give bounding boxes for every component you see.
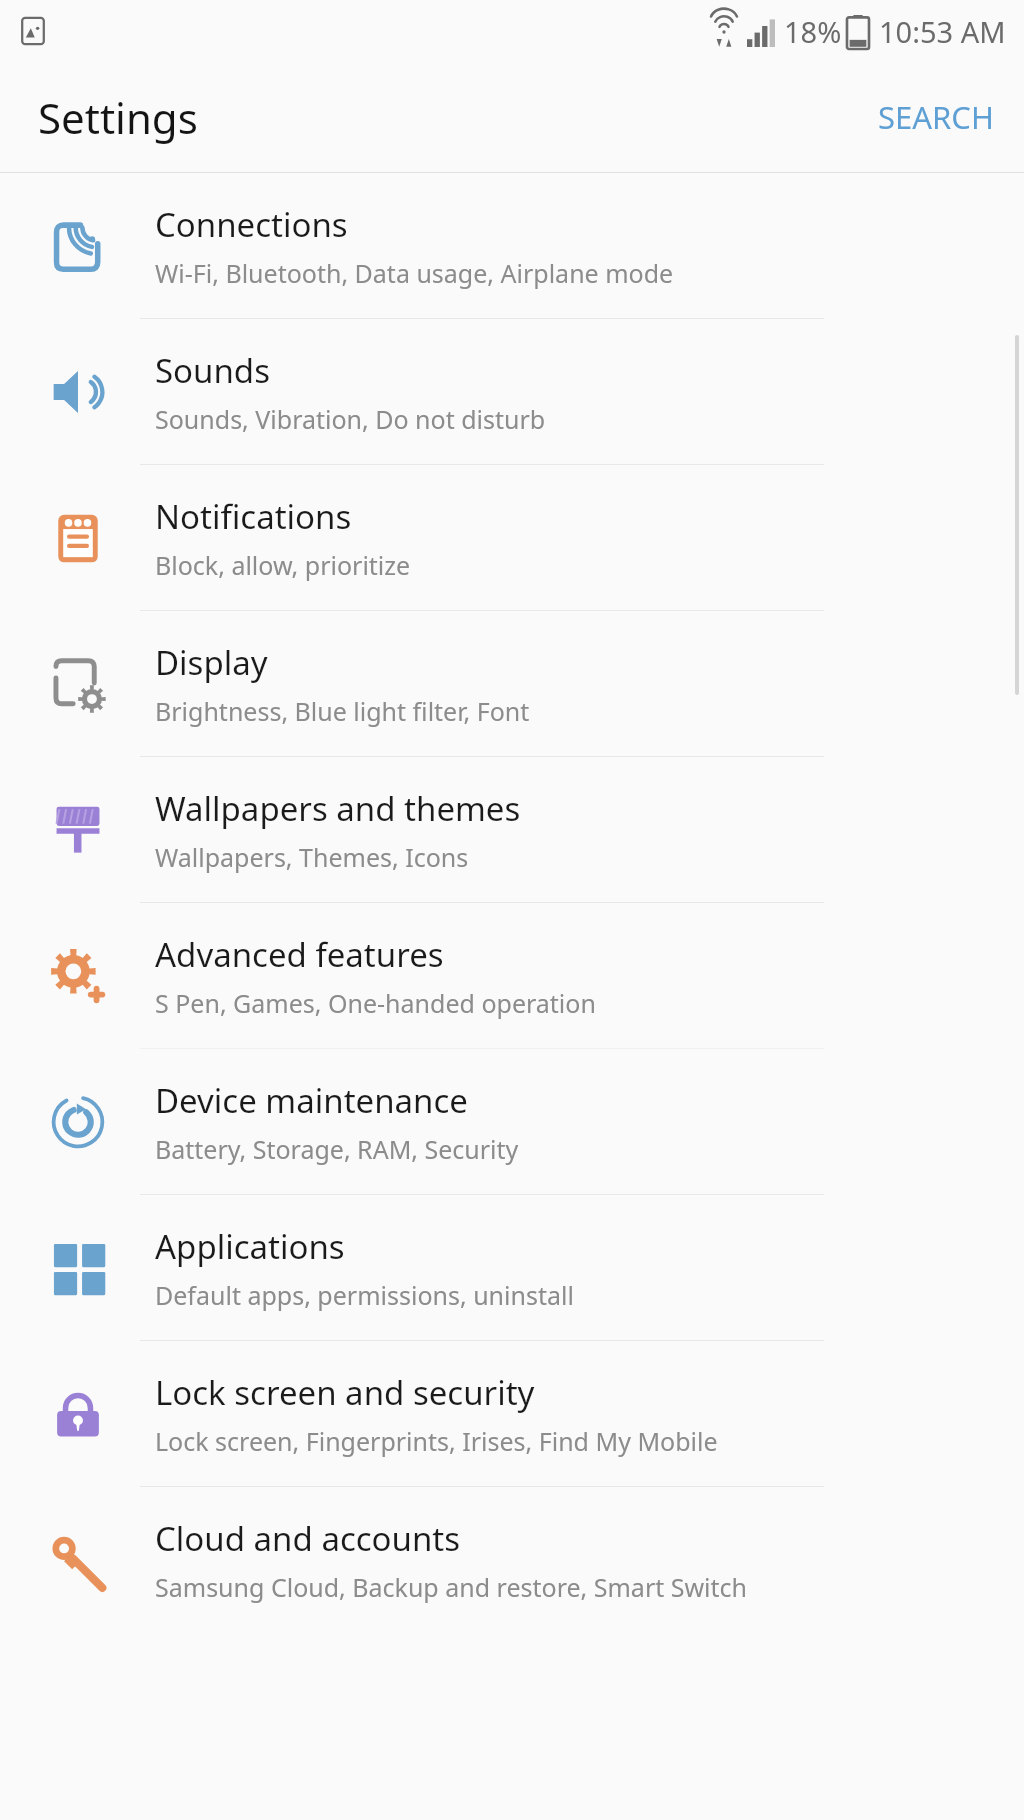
button[interactable]: Applications [0,1195,1024,1340]
button[interactable]: Cloud and accounts [0,1487,1024,1632]
staticText: Wallpapers, Themes, Icons [155,840,469,874]
staticText: Sounds [155,348,270,393]
button[interactable]: Sounds [0,319,1024,464]
button[interactable]: SEARCH [848,80,1024,154]
button[interactable]: Display [0,611,1024,756]
button[interactable]: Advanced features [0,903,1024,1048]
staticText: Wi-Fi, Bluetooth, Data usage, Airplane m… [155,256,674,290]
staticText: Brightness, Blue light filter, Font [155,694,530,728]
staticText: Samsung Cloud, Backup and restore, Smart… [155,1570,748,1604]
staticText: Lock screen and security [155,1370,535,1415]
staticText: Connections [155,202,348,247]
staticText: Settings [38,89,198,146]
staticText: Display [155,640,268,685]
staticText: Applications [155,1224,345,1269]
staticText: Cloud and accounts [155,1516,461,1561]
staticText: SEARCH [878,96,994,138]
staticText: Notifications [155,494,352,539]
button[interactable]: Device maintenance [0,1049,1024,1194]
button[interactable]: Connections [0,173,1024,318]
staticText: Device maintenance [155,1078,468,1123]
staticText: Block, allow, prioritize [155,548,411,582]
staticText: 10:53 AM [879,12,1006,51]
staticText: 18% [784,12,842,51]
staticText: Lock screen, Fingerprints, Irises, Find … [155,1424,718,1458]
staticText: Wallpapers and themes [155,786,521,831]
staticText: Battery, Storage, RAM, Security [155,1132,519,1166]
staticText: Default apps, permissions, uninstall [155,1278,574,1312]
staticText: Advanced features [155,932,444,977]
button[interactable]: Wallpapers and themes [0,757,1024,902]
staticText: S Pen, Games, One-handed operation [155,986,596,1020]
button[interactable]: Notifications [0,465,1024,610]
button[interactable]: Lock screen and security [0,1341,1024,1486]
staticText: Sounds, Vibration, Do not disturb [155,402,546,436]
